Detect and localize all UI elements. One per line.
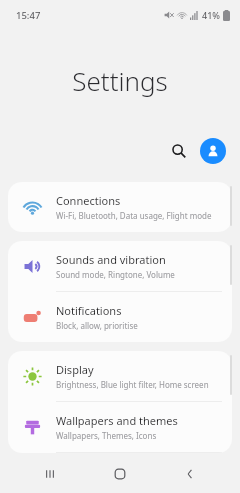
staticText: 15:47 [16, 9, 41, 22]
staticText: Sounds and vibration [56, 252, 166, 267]
staticText: Wallpapers and themes [56, 413, 178, 428]
button[interactable]: Connections [8, 182, 232, 232]
button[interactable]: Account [200, 138, 226, 164]
staticText: Display [56, 362, 94, 377]
staticText: Connections [56, 193, 121, 208]
button[interactable]: Display [8, 351, 232, 401]
staticText: Block, allow, prioritise [56, 320, 138, 331]
staticText: Settings [72, 63, 168, 98]
button[interactable]: Notifications [8, 292, 232, 342]
button[interactable]: Search [164, 136, 194, 166]
button[interactable]: Back [170, 455, 210, 493]
button[interactable]: Sounds and vibration [8, 241, 232, 291]
staticText: 41% [202, 9, 220, 21]
button[interactable]: Recents [30, 455, 70, 493]
staticText: Sound mode, Ringtone, Volume [56, 269, 175, 280]
staticText: Wi-Fi, Bluetooth, Data usage, Flight mod… [56, 210, 212, 221]
button[interactable]: Home [100, 455, 140, 493]
staticText: Wallpapers, Themes, Icons [56, 430, 157, 441]
button[interactable]: Wallpapers and themes [8, 402, 232, 452]
staticText: Notifications [56, 303, 122, 318]
staticText: Brightness, Blue light filter, Home scre… [56, 379, 209, 390]
